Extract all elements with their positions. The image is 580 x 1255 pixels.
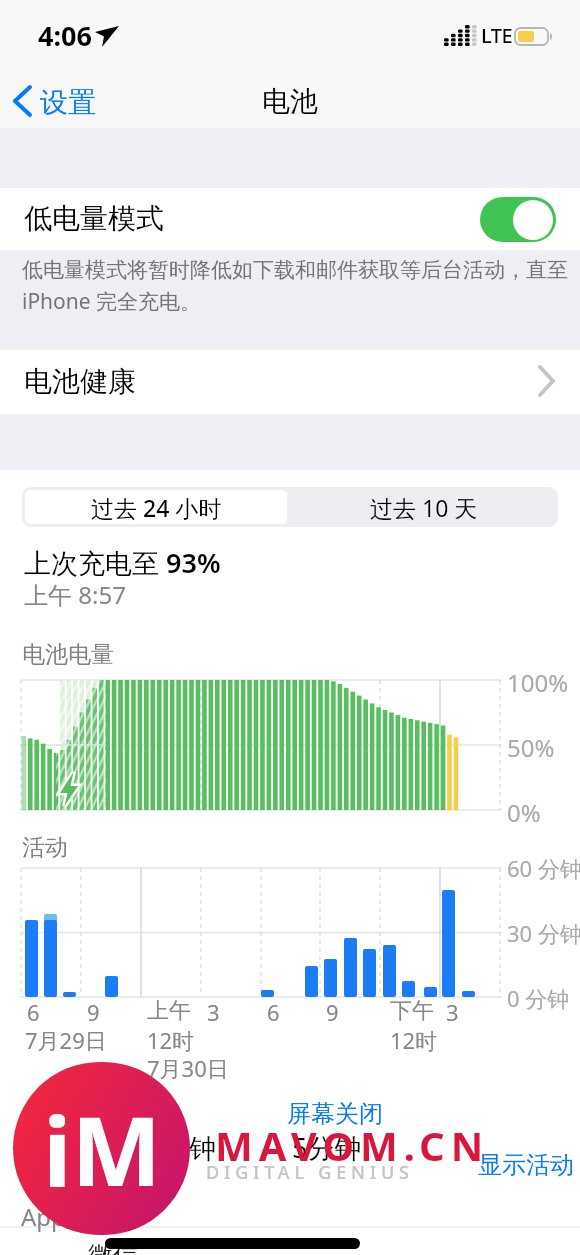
staticText: 100% (507, 666, 569, 699)
staticText: 0 分钟 (507, 983, 570, 1013)
staticText: 低电量模式 (24, 201, 164, 236)
staticText: 3 (207, 997, 220, 1027)
button[interactable]: 过去 24 小时 (24, 489, 288, 525)
staticText: 7月29日 (25, 1025, 107, 1055)
staticText: 4小时37分钟 (62, 1129, 217, 1166)
button[interactable]: 屏幕开启 (40, 1099, 240, 1169)
button[interactable]: 显示活动 (478, 1150, 578, 1186)
staticText: 50% (507, 731, 555, 764)
staticText: 下午 (390, 997, 434, 1025)
staticText: 0% (507, 796, 541, 829)
staticText: 设置 (40, 85, 96, 120)
staticText: App (21, 1200, 66, 1233)
staticText: LTE (481, 22, 513, 49)
staticText: MAVOM.CN (215, 1118, 490, 1172)
button[interactable] (480, 197, 556, 242)
button[interactable]: 屏幕关闭 (280, 1099, 480, 1169)
staticText: 上次充电至 93% (24, 544, 221, 581)
staticText: 上午 (147, 997, 191, 1025)
staticText: 4:06 (38, 17, 92, 54)
staticText: 活动 (22, 833, 68, 862)
staticText: 电池 (262, 84, 318, 119)
staticText: 微信 (88, 1240, 138, 1255)
staticText: iPhone 完全充电。 (22, 287, 202, 316)
staticText: 30 分钟 (507, 918, 580, 948)
staticText: 12时 (147, 1025, 195, 1055)
staticText: DIGITAL GENIUS (206, 1160, 414, 1185)
staticText: 显示活动 (478, 1150, 574, 1180)
staticText: 9 (326, 997, 339, 1027)
staticText: 电池电量 (22, 640, 114, 669)
staticText: 6 (27, 997, 40, 1027)
staticText: 屏幕开启 (85, 1099, 181, 1129)
staticText: 60 分钟 (507, 853, 580, 883)
staticText: 过去 10 天 (370, 492, 478, 523)
button[interactable]: 过去 10 天 (290, 487, 558, 527)
staticText: 5分钟 (292, 1129, 362, 1166)
staticText: 上午 8:57 (24, 578, 126, 611)
staticText: 9 (87, 997, 100, 1027)
staticText: 屏幕关闭 (287, 1099, 383, 1129)
staticText: iM (43, 1084, 161, 1213)
button[interactable]: 电池健康 (0, 349, 580, 415)
button[interactable]: 低电量模式 (0, 187, 580, 251)
staticText: 过去 24 小时 (91, 492, 222, 523)
staticText: 低电量模式将暂时降低如下载和邮件获取等后台活动，直至 (22, 257, 568, 283)
staticText: 电池健康 (24, 364, 136, 399)
staticText: 12时 (390, 1025, 438, 1055)
staticText: 6 (267, 997, 280, 1027)
staticText: 3 (446, 997, 459, 1027)
staticText: 7月30日 (147, 1053, 229, 1083)
